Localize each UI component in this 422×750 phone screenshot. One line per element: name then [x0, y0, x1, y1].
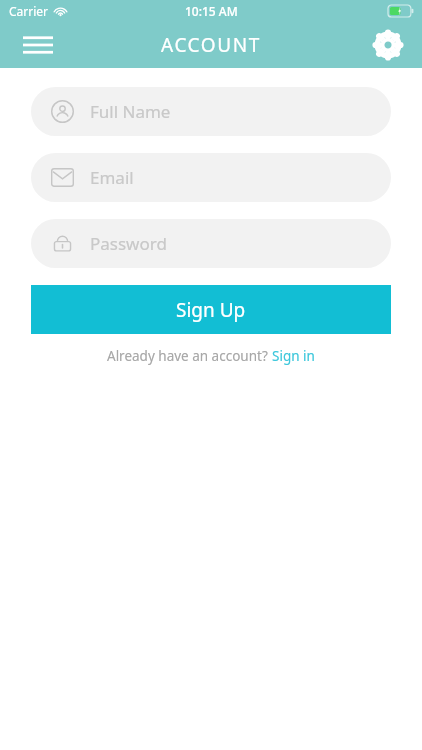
staticText: Sign in [272, 347, 315, 365]
button[interactable]: Email [31, 153, 391, 202]
staticText: 10:15 AM [185, 3, 238, 19]
staticText: Already have an account? [107, 347, 272, 365]
staticText: Carrier [9, 3, 49, 19]
button[interactable]: Sign Up [31, 285, 391, 334]
button[interactable]: Sign in [272, 347, 315, 365]
button[interactable]: Password [31, 219, 391, 268]
button[interactable]: Menu [14, 22, 62, 68]
staticText: Email [90, 166, 134, 189]
staticText: ACCOUNT [161, 32, 261, 58]
staticText: Password [90, 232, 167, 255]
button[interactable]: Full Name [31, 87, 391, 136]
staticText: Sign Up [176, 297, 246, 323]
staticText: Full Name [90, 100, 171, 123]
button[interactable]: Settings [364, 22, 412, 68]
